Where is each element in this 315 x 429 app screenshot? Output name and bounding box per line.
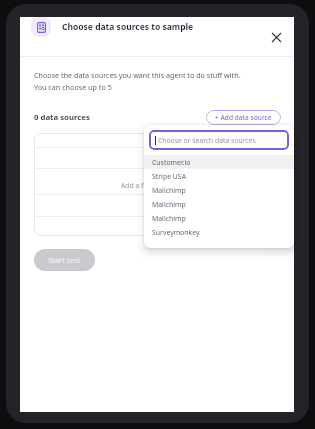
- button[interactable]: Close: [267, 28, 285, 46]
- staticText: 0 data sources: [34, 112, 90, 123]
- button[interactable]: Start test: [34, 249, 95, 271]
- staticText: Choose or search data sources: [158, 136, 256, 145]
- button[interactable]: Mailchimp: [144, 183, 294, 197]
- staticText: Start test: [48, 255, 81, 265]
- button[interactable]: Mailchimp: [144, 197, 294, 211]
- staticText: + Add data source: [215, 113, 272, 122]
- staticText: Mailchimp: [152, 214, 186, 223]
- button[interactable]: Choose or search data sources: [149, 130, 289, 150]
- staticText: Surveymonkey: [152, 228, 200, 237]
- button[interactable]: Mailchimp: [144, 211, 294, 225]
- staticText: Mailchimp: [152, 200, 186, 209]
- staticText: Add a few data sources: [121, 181, 195, 190]
- staticText: Choose the data sources you want this ag…: [34, 70, 241, 80]
- staticText: Choose data sources to sample: [62, 21, 194, 33]
- staticText: Customer.io: [152, 158, 191, 167]
- button[interactable]: Surveymonkey: [144, 225, 294, 239]
- button[interactable]: + Add data source: [206, 110, 281, 125]
- button[interactable]: Add a few data sources: [34, 133, 281, 236]
- staticText: You can choose up to 5: [34, 82, 112, 92]
- staticText: Mailchimp: [152, 186, 186, 195]
- button[interactable]: Stripe USA: [144, 169, 294, 183]
- staticText: Stripe USA: [152, 172, 187, 181]
- button[interactable]: Customer.io: [144, 155, 294, 169]
